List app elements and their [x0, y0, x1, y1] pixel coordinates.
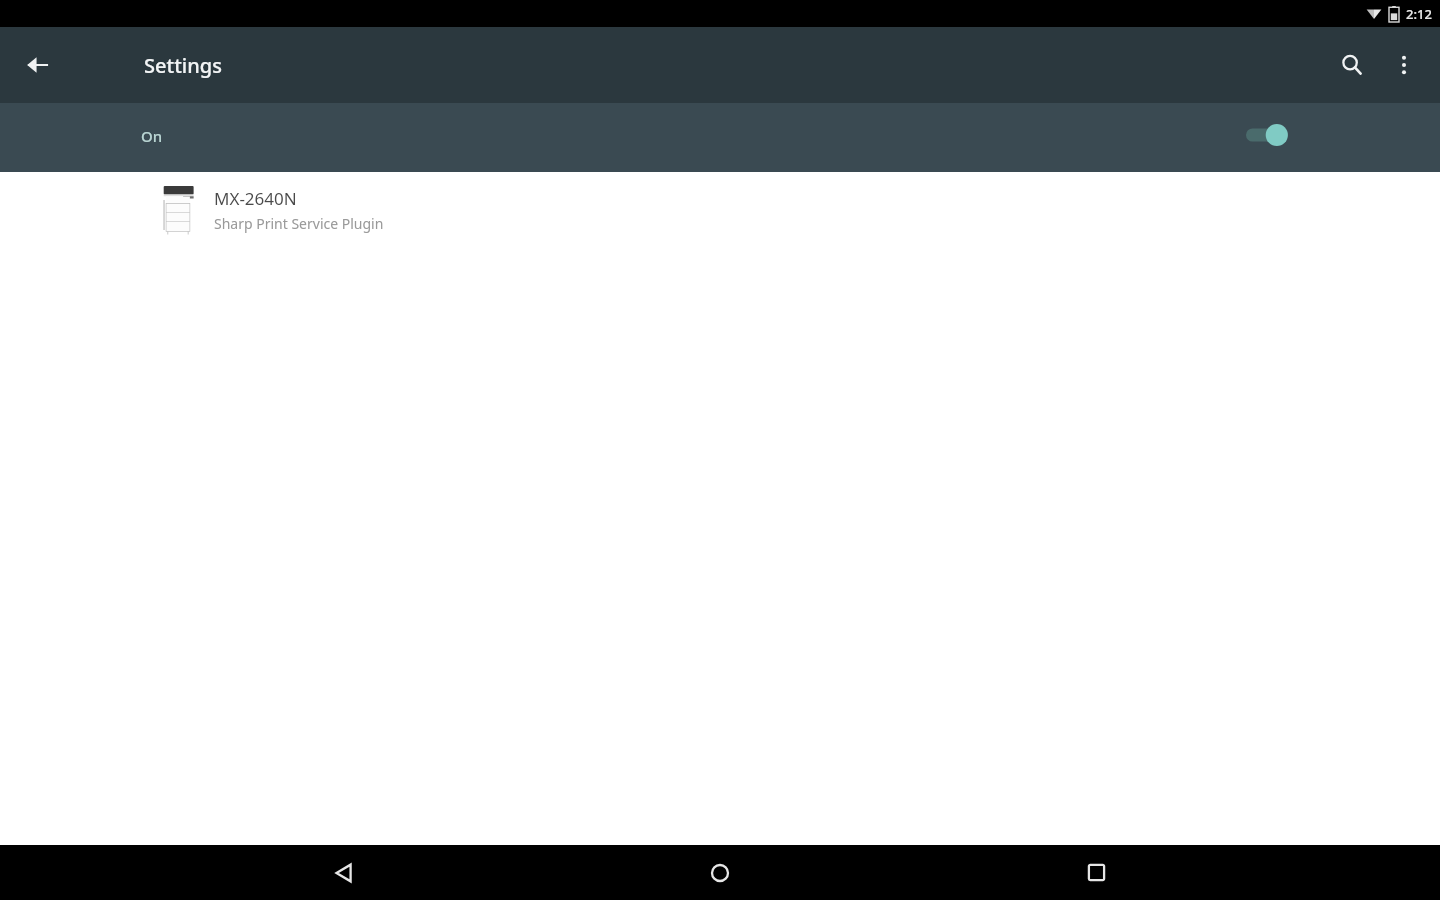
staticText: On: [141, 126, 163, 146]
button[interactable]: Back: [12, 39, 64, 91]
button[interactable]: Recent apps: [1064, 845, 1128, 900]
button[interactable]: Home: [688, 845, 752, 900]
staticText: Sharp Print Service Plugin: [214, 214, 384, 233]
button[interactable]: MX-2640N: [0, 172, 1440, 248]
staticText: MX-2640N: [214, 187, 297, 210]
button[interactable]: More options: [1378, 39, 1430, 91]
button[interactable]: On: [0, 103, 1440, 172]
staticText: Settings: [144, 52, 222, 79]
button[interactable]: Back: [312, 845, 376, 900]
button[interactable]: Search: [1326, 39, 1378, 91]
button[interactable]: Print service on toggle: [1244, 120, 1296, 150]
staticText: 2:12: [1406, 5, 1432, 23]
